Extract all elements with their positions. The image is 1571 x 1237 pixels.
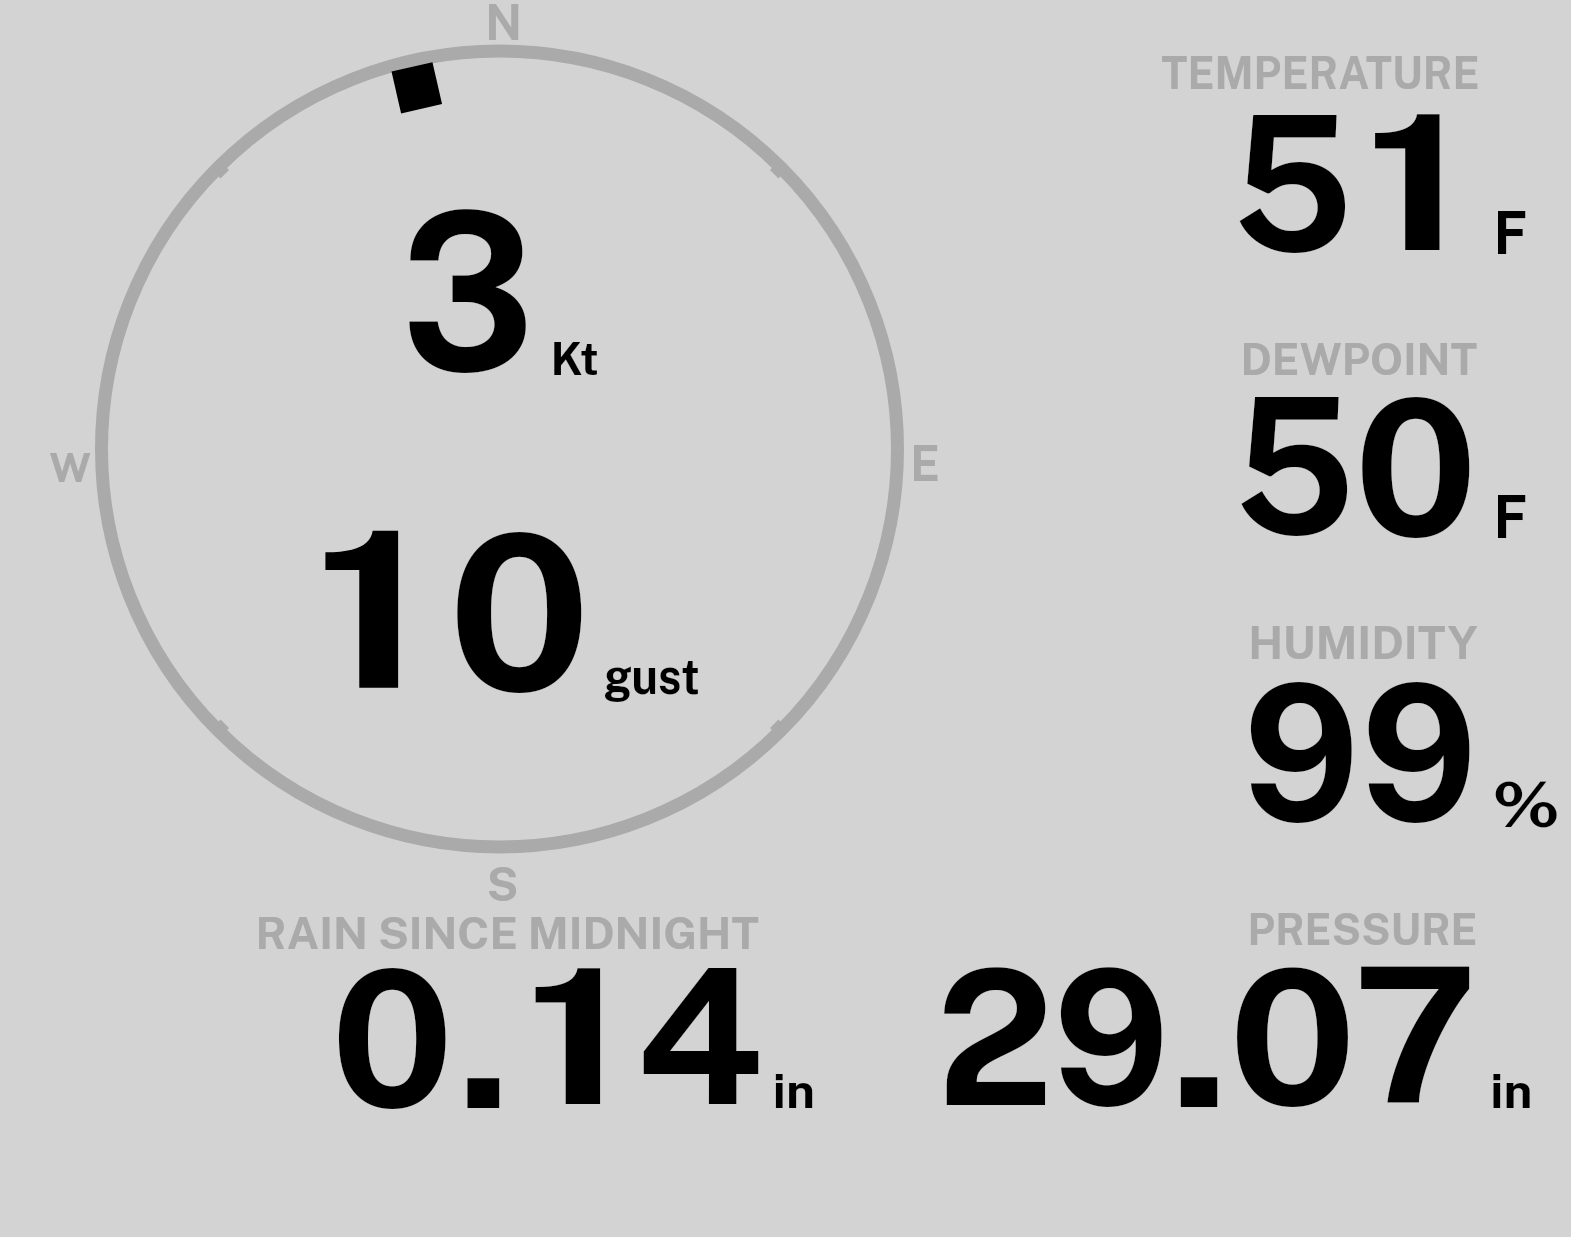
other: Weather station dashboard xyxy=(0,0,1571,1237)
button[interactable]: Dew point 50 degrees Fahrenheit xyxy=(1140,320,1571,585)
button[interactable]: Temperature 51 degrees Fahrenheit xyxy=(1140,30,1571,300)
button[interactable]: Wind 3 knots, gusting 10, from north nor… xyxy=(95,45,905,855)
button[interactable]: Humidity 99 percent xyxy=(1140,605,1571,870)
button[interactable]: Rain since midnight 0.14 inches xyxy=(230,895,840,1125)
button[interactable]: Pressure 29.07 inches xyxy=(900,895,1560,1125)
